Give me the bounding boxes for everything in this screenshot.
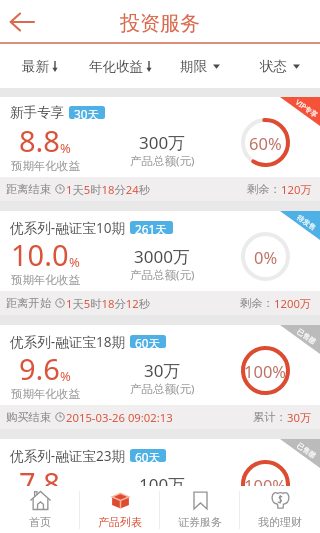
staticText: 优系列-融证宝23期 [10,446,126,465]
staticText: 120万 [281,182,312,197]
button[interactable]: 状态 [240,44,320,88]
staticText: 产品总额(元) [130,153,195,169]
staticText: 7.8 [19,463,60,486]
staticText: 投资服务 [120,11,200,36]
button[interactable]: 证券服务 [160,486,240,533]
staticText: 距离结束 [6,182,52,196]
staticText: 已售罄 [295,441,318,460]
button[interactable]: 首页 [0,486,80,533]
button[interactable]: 最新 [0,44,80,88]
button[interactable]: 新手专享 [0,97,320,201]
button[interactable]: 期限 [160,44,240,88]
staticText: 10.0 [11,235,69,274]
staticText: 产品总额(元) [130,267,195,283]
button[interactable]: 我的理财 [240,486,320,533]
button[interactable]: 优系列-融证宝18期 [0,325,320,429]
staticText: 30万 [287,410,312,425]
staticText: 9.6 [19,349,60,388]
staticText: 预期年化收益 [11,159,80,173]
button[interactable]: 返回 [4,4,40,40]
staticText: 0% [254,246,278,268]
staticText: 证券服务 [178,515,222,529]
staticText: % [60,139,71,157]
staticText: 1天5时18分12秒 [66,296,150,311]
staticText: 3000万 [134,245,190,268]
staticText: 60% [249,132,282,154]
staticText: 60天 [135,335,161,348]
staticText: 2015-03-26 09:02:13 [66,410,173,425]
staticText: 优系列-融证宝10期 [10,218,126,237]
staticText: 100% [244,360,287,382]
staticText: 新手专享 [10,104,65,121]
button[interactable]: 优系列-融证宝10期 [0,211,320,315]
staticText: 年化收益 [89,58,143,75]
staticText: 预期年化收益 [11,273,80,287]
staticText: 8.8 [19,121,60,160]
staticText: 300万 [139,131,186,154]
staticText: 首页 [29,515,51,529]
staticText: 产品总额(元) [130,381,195,397]
staticText: 1天5时18分24秒 [66,182,150,197]
staticText: 优系列-融证宝18期 [10,332,126,351]
staticText: VIP专享 [293,98,320,120]
staticText: 已售罄 [295,327,318,346]
button[interactable]: 年化收益 [80,44,160,88]
staticText: 1200万 [274,296,312,311]
staticText: 剩余： [240,296,274,310]
staticText: 100% [244,474,287,486]
staticText: 购买结束 [6,410,52,424]
staticText: 期限 [180,58,207,75]
staticText: 剩余： [247,182,281,196]
staticText: 累计： [253,410,287,424]
staticText: 距离开始 [6,296,52,310]
button[interactable]: 优系列-融证宝23期 [0,439,320,486]
staticText: 100万 [139,473,186,486]
staticText: 状态 [260,58,287,75]
staticText: % [69,253,80,271]
staticText: 261天 [135,221,168,234]
staticText: 60天 [135,449,161,462]
staticText: 产品列表 [98,515,142,529]
staticText: 最新 [22,58,49,75]
staticText: 预期年化收益 [11,387,80,401]
staticText: % [60,367,71,385]
staticText: 30万 [144,359,181,382]
staticText: 待发售 [295,213,318,232]
staticText: 30天 [74,106,100,119]
button[interactable]: 产品列表 [80,486,160,533]
staticText: 我的理财 [258,515,302,529]
